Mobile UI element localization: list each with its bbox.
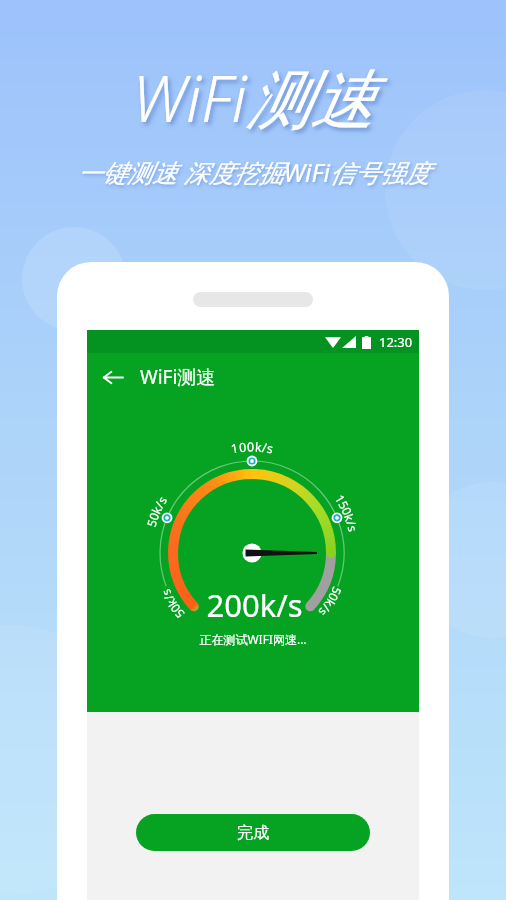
button[interactable]: 完成 xyxy=(136,814,370,851)
staticText: 12:30 xyxy=(379,333,413,351)
staticText: 200k/s xyxy=(206,584,303,626)
staticText: 完成 xyxy=(237,823,269,843)
staticText: 正在测试WIFI网速... xyxy=(199,631,307,647)
staticText: WiFi测速 xyxy=(140,364,216,390)
button[interactable]: Back xyxy=(95,359,131,395)
staticText: 一键测速 深度挖掘WiFi信号强度 xyxy=(77,155,430,189)
staticText: WiFi测速 xyxy=(132,54,375,141)
